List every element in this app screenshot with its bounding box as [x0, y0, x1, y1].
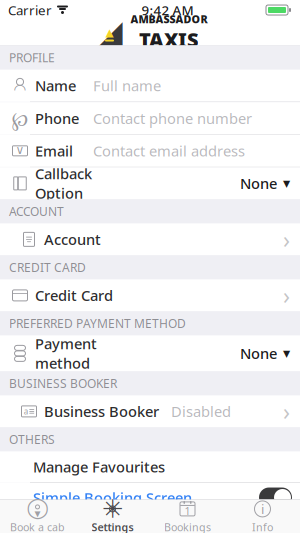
- staticText: PROFILE: [9, 50, 55, 65]
- button[interactable]: ✳: [75, 500, 150, 533]
- staticText: i: [261, 500, 264, 518]
- button[interactable]: Payment: [0, 335, 300, 371]
- staticText: Email: [35, 141, 73, 161]
- button[interactable]: ∨: [0, 135, 300, 167]
- button[interactable]: Credit Card: [0, 279, 300, 311]
- button[interactable]: ◠: [0, 70, 300, 102]
- staticText: Simple Booking Screen: [33, 488, 192, 507]
- staticText: a: [24, 406, 28, 417]
- staticText: ℘: [11, 105, 28, 131]
- staticText: Full name: [93, 76, 161, 95]
- staticText: ✳: [102, 494, 123, 523]
- staticText: Payment: [35, 334, 97, 353]
- staticText: ›: [283, 280, 290, 310]
- staticText: AMBASSADOR: [130, 12, 207, 26]
- staticText: Carrier: [8, 1, 52, 19]
- staticText: CREDIT CARD: [9, 259, 86, 275]
- staticText: Settings: [91, 520, 133, 533]
- button[interactable]: Simple Booking Screen: [0, 483, 300, 512]
- staticText: Account: [44, 230, 101, 249]
- staticText: Disabled: [171, 402, 231, 421]
- button[interactable]: a: [0, 395, 300, 427]
- staticText: Business Booker: [44, 402, 159, 421]
- staticText: None: [240, 174, 277, 193]
- staticText: ›: [283, 224, 290, 254]
- staticText: None: [240, 344, 277, 363]
- staticText: method: [35, 353, 90, 373]
- staticText: ▼: [283, 178, 290, 189]
- staticText: 1: [184, 504, 190, 518]
- button[interactable]: ℘: [0, 102, 300, 134]
- button[interactable]: i: [225, 500, 300, 533]
- staticText: Contact phone number: [93, 108, 252, 128]
- staticText: ▲: [105, 26, 113, 38]
- staticText: Book a cab: [10, 520, 65, 533]
- staticText: BUSINESS BOOKER: [9, 375, 117, 391]
- staticText: ◠: [13, 81, 26, 98]
- staticText: TAXIS: [139, 26, 199, 53]
- staticText: ◯: [26, 496, 48, 519]
- staticText: Callback Option: [35, 164, 92, 203]
- staticText: Manage Favourites: [33, 457, 165, 477]
- staticText: PREFERRED PAYMENT METHOD: [9, 315, 186, 331]
- staticText: ›: [283, 396, 290, 426]
- staticText: Name: [35, 76, 76, 95]
- staticText: Bookings: [164, 520, 211, 533]
- staticText: 9:42 AM: [141, 1, 193, 19]
- button[interactable]: Account: [0, 223, 300, 255]
- staticText: ∨: [15, 143, 24, 157]
- staticText: ▾: [34, 507, 40, 520]
- button[interactable]: 1: [150, 500, 225, 533]
- staticText: Contact email address: [93, 141, 245, 161]
- staticText: ▼: [283, 348, 290, 359]
- staticText: Phone: [35, 108, 79, 128]
- staticText: ACCOUNT: [9, 203, 64, 219]
- staticText: ◢: [96, 13, 123, 52]
- staticText: OTHERS: [9, 431, 55, 447]
- button[interactable]: Callback Option: [0, 167, 300, 199]
- staticText: Info: [252, 520, 273, 533]
- button[interactable]: ◯: [0, 500, 75, 533]
- staticText: Credit Card: [35, 286, 113, 305]
- button[interactable]: Manage Favourites: [0, 451, 300, 482]
